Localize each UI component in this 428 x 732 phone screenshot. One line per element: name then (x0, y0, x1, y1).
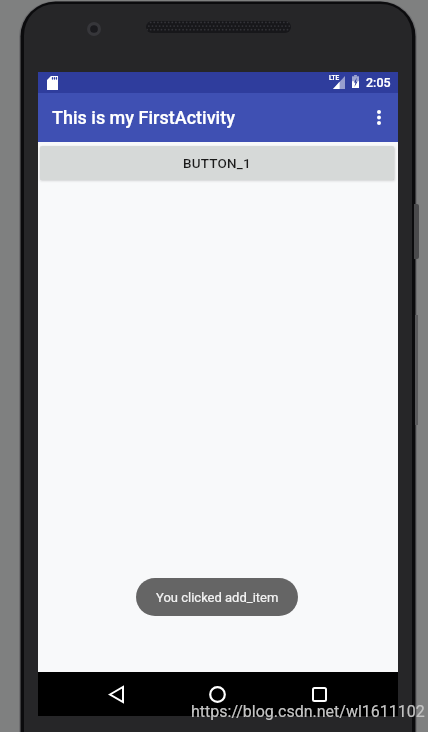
staticText: You clicked add_item (156, 590, 279, 605)
button[interactable]: Back (94, 672, 138, 716)
button[interactable]: BUTTON_1 (40, 146, 394, 180)
button[interactable]: More options (358, 93, 398, 142)
staticText: This is my FirstActivity (52, 107, 235, 128)
staticText: https://blog.csdn.net/wl1611102 (191, 702, 425, 721)
staticText: 2:05 (366, 75, 391, 90)
button[interactable]: Recents (297, 672, 341, 716)
button[interactable]: Home (195, 672, 239, 716)
staticText: LTE (329, 74, 339, 82)
staticText: BUTTON_1 (183, 155, 251, 171)
